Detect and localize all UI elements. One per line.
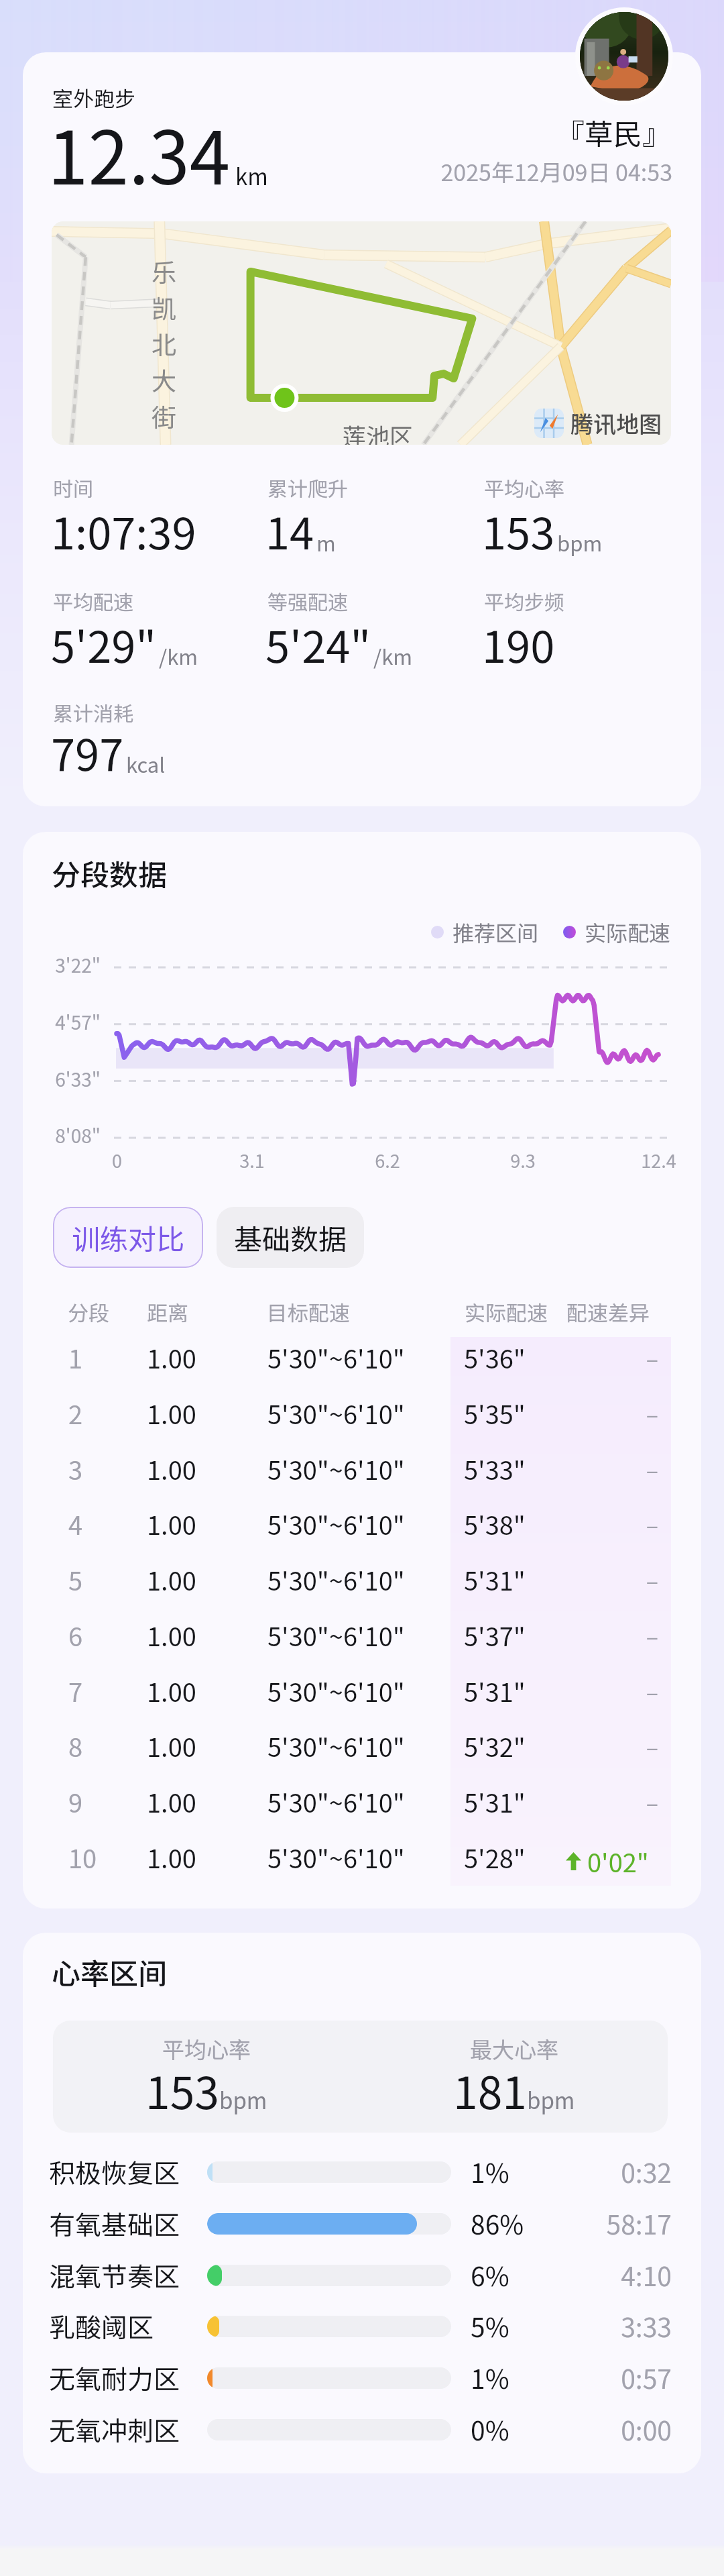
staticText: 1.00	[147, 1617, 196, 1654]
staticText: 0	[112, 1147, 122, 1173]
staticText: 平均心率	[162, 2033, 251, 2065]
staticText: –	[559, 1675, 658, 1708]
staticText: 5'30"~6'10"	[267, 1727, 405, 1764]
staticText: 平均心率	[484, 473, 564, 502]
staticText: 平均步频	[484, 586, 564, 615]
staticText: 5'31"	[464, 1561, 526, 1598]
staticText: 14	[265, 499, 314, 562]
staticText: 10	[68, 1839, 97, 1876]
staticText: 北	[152, 325, 176, 362]
staticText: –	[559, 1564, 658, 1597]
staticText: 5'32"	[464, 1727, 526, 1764]
staticText: 目标配速	[267, 1297, 350, 1327]
button[interactable]: 基础数据	[217, 1207, 364, 1268]
staticText: 基础数据	[234, 1217, 347, 1258]
staticText: 1.00	[147, 1839, 196, 1876]
staticText: 4	[68, 1505, 83, 1542]
button[interactable]	[207, 2367, 451, 2389]
staticText: –	[559, 1786, 658, 1819]
staticText: 5'31"	[464, 1783, 526, 1820]
staticText: 5'30"~6'10"	[267, 1617, 405, 1654]
staticText: 2025年12月09日 04:53	[336, 155, 672, 188]
staticText: 12.4	[641, 1147, 676, 1173]
staticText: 5'36"	[464, 1339, 526, 1376]
button[interactable]	[207, 2265, 451, 2286]
staticText: 心率区间	[52, 1951, 167, 1992]
staticText: –	[559, 1397, 658, 1430]
staticText: 凯	[152, 289, 176, 325]
staticText: –	[559, 1453, 658, 1486]
staticText: 1.00	[147, 1505, 196, 1542]
staticText: 乐	[152, 253, 176, 289]
staticText: 街	[152, 398, 176, 434]
staticText: 5'30"~6'10"	[267, 1561, 405, 1598]
staticText: 5	[68, 1561, 83, 1598]
button[interactable]	[207, 2213, 451, 2235]
staticText: 5'29"	[51, 612, 157, 676]
staticText: 时间	[53, 473, 93, 502]
staticText: 实际配速	[585, 916, 671, 947]
staticText: /km	[373, 641, 412, 671]
staticText: 莲池区	[343, 418, 414, 445]
staticText: 1%	[471, 2359, 509, 2396]
staticText: 1%	[471, 2153, 509, 2190]
button[interactable]	[207, 2316, 451, 2337]
staticText: 153	[145, 2057, 219, 2122]
staticText: 1.00	[147, 1672, 196, 1709]
staticText: 6%	[471, 2256, 509, 2294]
staticText: 86%	[471, 2204, 524, 2242]
staticText: 有氧基础区	[49, 2204, 180, 2242]
staticText: 室外跑步	[52, 83, 135, 113]
staticText: 1.00	[147, 1561, 196, 1598]
staticText: 乳酸阈区	[49, 2307, 154, 2345]
staticText: 5%	[471, 2307, 509, 2345]
staticText: 6'33"	[55, 1065, 101, 1093]
staticText: 9	[68, 1783, 83, 1820]
staticText: –	[559, 1342, 658, 1375]
staticText: 『草民』	[336, 111, 671, 153]
staticText: 181	[453, 2057, 527, 2122]
staticText: 3	[68, 1450, 83, 1487]
staticText: –	[559, 1730, 658, 1763]
staticText: /km	[159, 641, 198, 671]
staticText: kcal	[126, 749, 166, 779]
staticText: 4:10	[559, 2256, 672, 2294]
staticText: 腾讯地图	[570, 407, 662, 439]
staticText: 6.2	[375, 1147, 400, 1173]
staticText: 混氧节奏区	[49, 2256, 180, 2294]
staticText: 无氧耐力区	[49, 2359, 180, 2396]
staticText: –	[559, 1508, 658, 1541]
staticText: 1	[68, 1339, 83, 1376]
staticText: m	[316, 527, 336, 557]
button[interactable]	[207, 2161, 451, 2183]
staticText: 训练对比	[72, 1217, 185, 1258]
staticText: 0:57	[559, 2359, 672, 2396]
staticText: –	[559, 1619, 658, 1652]
staticText: 8	[68, 1727, 83, 1764]
staticText: 5'31"	[464, 1672, 526, 1709]
staticText: 8'08"	[55, 1122, 101, 1149]
staticText: 5'30"~6'10"	[267, 1839, 405, 1876]
staticText: 3:33	[559, 2307, 672, 2345]
staticText: 2	[68, 1395, 83, 1432]
staticText: 1.00	[147, 1339, 196, 1376]
staticText: 5'30"~6'10"	[267, 1339, 405, 1376]
staticText: 1.00	[147, 1395, 196, 1432]
staticText: 0%	[471, 2410, 509, 2448]
button[interactable]: Route map	[52, 221, 671, 445]
staticText: 0'02"	[587, 1843, 649, 1880]
button[interactable]: User avatar	[580, 12, 668, 101]
staticText: 5'30"~6'10"	[267, 1783, 405, 1820]
button[interactable]: 训练对比	[53, 1207, 203, 1268]
staticText: 6	[68, 1617, 83, 1654]
staticText: 153	[482, 499, 555, 562]
staticText: 1.00	[147, 1727, 196, 1764]
staticText: 190	[482, 612, 555, 676]
staticText: 0:32	[559, 2153, 672, 2190]
staticText: 1.00	[147, 1783, 196, 1820]
staticText: 5'28"	[464, 1839, 526, 1876]
staticText: 推荐区间	[452, 916, 539, 947]
staticText: 5'30"~6'10"	[267, 1395, 405, 1432]
staticText: 距离	[147, 1297, 188, 1327]
